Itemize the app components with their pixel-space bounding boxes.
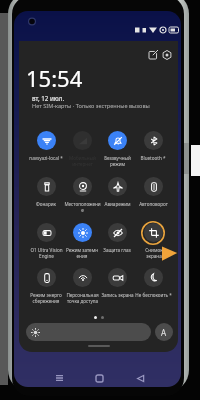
- staticText: O1 Ultra Vision Engine: [30, 247, 63, 259]
- button[interactable]: Фонарик: [27, 177, 65, 219]
- staticText: Защита глаз: [103, 247, 131, 253]
- button[interactable]: Местоположени е: [63, 177, 101, 219]
- button[interactable]: Авиарежим: [98, 177, 136, 219]
- button[interactable]: Brightness: [26, 323, 151, 341]
- staticText: Не беспокоить *: [135, 292, 172, 298]
- staticText: Режим затемн ения: [66, 247, 98, 259]
- button[interactable]: Edit tiles: [146, 47, 161, 62]
- staticText: Мобильный интернет: [69, 155, 96, 167]
- button[interactable]: navsyazi-local *: [27, 131, 65, 173]
- button[interactable]: Персональная точка доступа: [63, 268, 101, 310]
- staticText: Фонарик: [36, 201, 56, 207]
- button[interactable]: Режим затемн ения: [63, 223, 101, 265]
- button[interactable]: Снимок экрана: [134, 223, 172, 265]
- button[interactable]: Settings: [159, 47, 174, 62]
- staticText: 15:54: [26, 63, 83, 93]
- button[interactable]: Auto brightness: [155, 323, 173, 341]
- staticText: Снимок экрана: [145, 247, 163, 259]
- button[interactable]: Режим энерго сбережения: [27, 268, 65, 310]
- button[interactable]: Back: [131, 369, 149, 387]
- button[interactable]: Не беспокоить *: [134, 268, 172, 310]
- staticText: Автоповорот: [139, 201, 168, 207]
- staticText: Авиарежим: [104, 201, 131, 207]
- staticText: Персональная точка доступа: [66, 292, 99, 304]
- staticText: Местоположени е: [64, 201, 101, 213]
- staticText: A: [161, 327, 167, 338]
- staticText: Запись экрана: [101, 292, 134, 298]
- staticText: Нет SIM-карты · Только экстренные вызовы: [32, 102, 150, 110]
- staticText: Режим энерго сбережения: [30, 292, 62, 304]
- staticText: navsyazi-local *: [29, 155, 63, 161]
- button[interactable]: Home: [90, 369, 108, 387]
- button[interactable]: Bluetooth *: [134, 131, 172, 173]
- button[interactable]: Автоповорот: [134, 177, 172, 219]
- button[interactable]: Мобильный интернет: [63, 131, 101, 173]
- button[interactable]: Защита глаз: [98, 223, 136, 265]
- staticText: Беззвучный режим: [104, 155, 131, 167]
- button[interactable]: Recent apps: [50, 369, 68, 387]
- button[interactable]: Беззвучный режим: [98, 131, 136, 173]
- staticText: Bluetooth *: [140, 155, 166, 161]
- staticText: вт, 12 июл.: [32, 94, 65, 102]
- button[interactable]: Запись экрана: [98, 268, 136, 310]
- button[interactable]: O1 Ultra Vision Engine: [27, 223, 65, 265]
